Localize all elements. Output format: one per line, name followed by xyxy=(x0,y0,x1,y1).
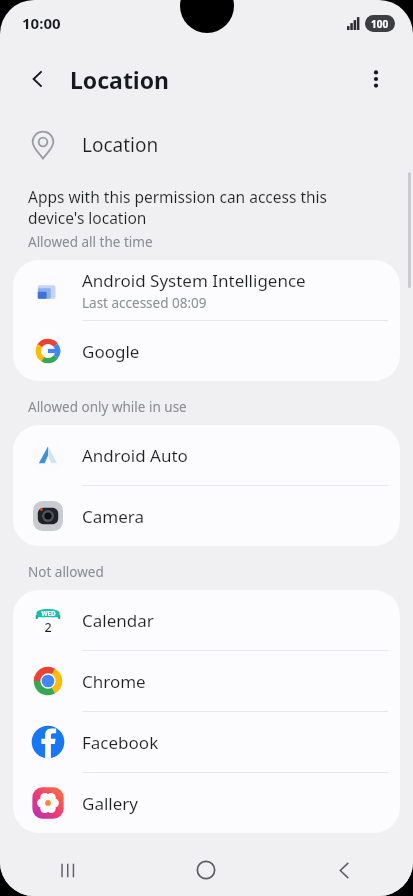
staticText: 2 xyxy=(44,619,52,636)
button[interactable]: Back xyxy=(275,844,413,896)
staticText: Calendar xyxy=(82,609,154,632)
button[interactable]: Chrome xyxy=(13,651,400,712)
button[interactable]: WED xyxy=(13,590,400,651)
button[interactable]: Android System Intelligence xyxy=(13,260,400,321)
staticText: 100 xyxy=(371,17,389,31)
button[interactable]: Gallery xyxy=(13,773,400,833)
staticText: Google xyxy=(82,340,140,363)
staticText: Camera xyxy=(82,505,144,528)
button[interactable]: More options xyxy=(353,56,399,102)
staticText: Allowed all the time xyxy=(28,233,153,251)
staticText: Last accessed 08:09 xyxy=(82,294,207,312)
button[interactable]: Android Auto xyxy=(13,425,400,486)
staticText: WED xyxy=(41,609,56,618)
staticText: Allowed only while in use xyxy=(28,398,187,416)
staticText: Android Auto xyxy=(82,444,188,467)
staticText: Android System Intelligence xyxy=(82,269,306,292)
button[interactable]: Google xyxy=(13,321,400,381)
staticText: 10:00 xyxy=(22,13,61,33)
staticText: Apps with this permission can access thi… xyxy=(28,186,377,229)
staticText: Location xyxy=(70,64,170,95)
staticText: Facebook xyxy=(82,731,159,754)
staticText: Chrome xyxy=(82,670,146,693)
button[interactable]: Recent apps xyxy=(0,844,137,896)
button[interactable]: Back xyxy=(14,55,62,103)
button[interactable]: Camera xyxy=(13,486,400,546)
staticText: Gallery xyxy=(82,792,138,815)
button[interactable]: Home xyxy=(137,844,275,896)
staticText: Location xyxy=(82,132,159,158)
staticText: Not allowed xyxy=(28,563,104,581)
button[interactable]: Facebook xyxy=(13,712,400,773)
